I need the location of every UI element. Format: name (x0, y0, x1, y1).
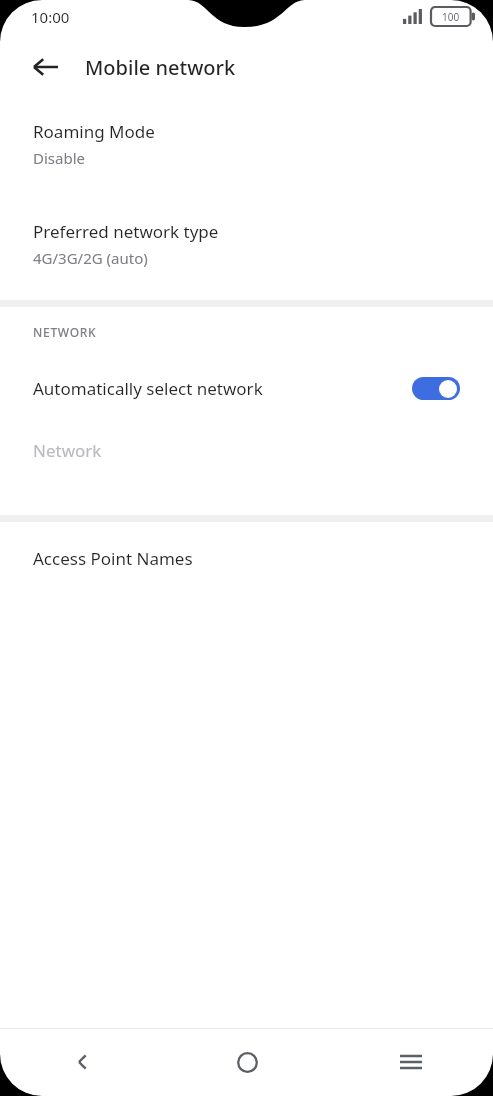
staticText: Preferred network type (33, 220, 219, 243)
button[interactable]: Back (20, 41, 72, 93)
button[interactable]: Automatically select network (0, 357, 493, 419)
button[interactable]: Preferred network type (0, 220, 493, 272)
staticText: 10:00 (31, 7, 70, 27)
button[interactable]: Home (165, 1028, 329, 1096)
button[interactable]: Access Point Names (0, 522, 493, 594)
staticText: NETWORK (33, 324, 97, 340)
staticText: 100 (442, 10, 460, 24)
staticText: Network (33, 439, 102, 462)
staticText: Roaming Mode (33, 120, 155, 143)
staticText: Disable (33, 148, 85, 168)
button[interactable]: Recent apps (329, 1028, 493, 1096)
staticText: Mobile network (85, 54, 236, 81)
button[interactable]: Roaming Mode (0, 98, 493, 172)
staticText: 4G/3G/2G (auto) (33, 248, 148, 268)
staticText: Access Point Names (33, 547, 193, 570)
staticText: Automatically select network (33, 377, 412, 400)
button[interactable]: Back (0, 1028, 165, 1096)
